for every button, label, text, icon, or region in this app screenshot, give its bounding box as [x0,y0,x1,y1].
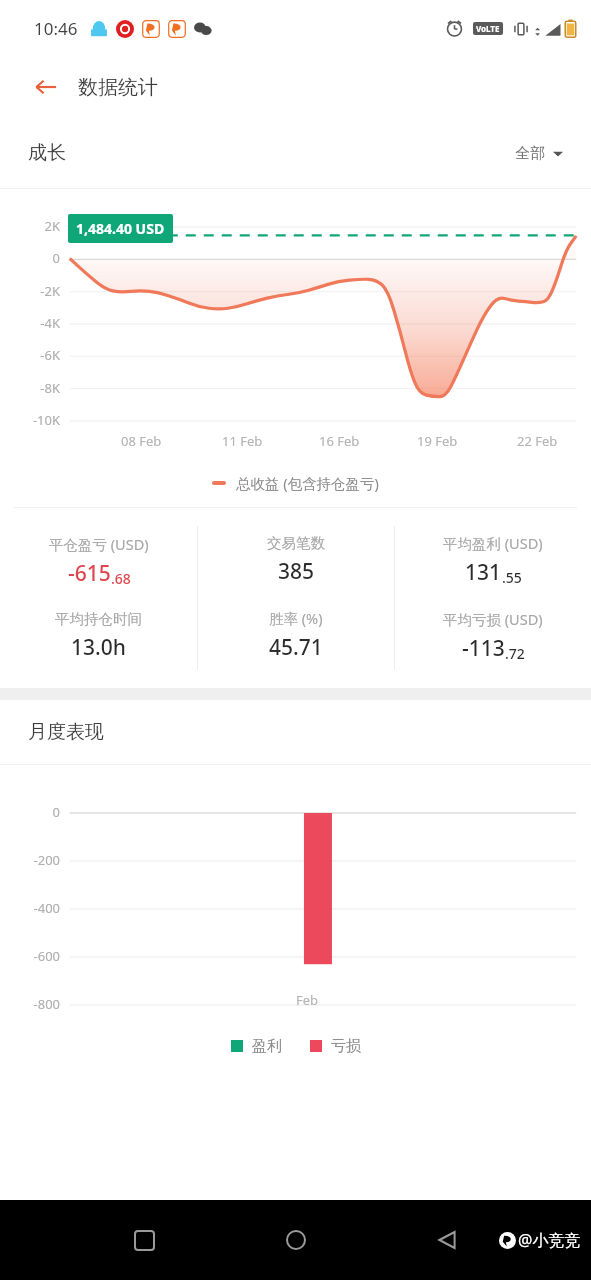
staticText: -2K [8,282,60,300]
staticText: 亏损 [331,1037,361,1056]
staticText: 胜率 (%) [269,608,323,628]
button[interactable]: Back [423,1216,471,1264]
staticText: 2K [8,217,60,235]
staticText: -6K [8,346,60,364]
staticText: .72 [505,644,525,663]
staticText: 数据统计 [78,75,158,100]
staticText: -113 [462,634,505,663]
staticText: -400 [6,899,60,917]
staticText: 131 [465,558,502,587]
staticText: 0 [8,249,60,267]
staticText: VoLTE [476,23,500,34]
staticText: 平均持仓时间 [55,610,142,628]
staticText: 22 Feb [517,432,558,450]
staticText: 385 [278,557,315,586]
staticText: 平均亏损 (USD) [443,609,543,629]
staticText: 月度表现 [28,720,104,744]
staticText: .68 [111,569,131,588]
staticText: -4K [8,314,60,332]
staticText: -800 [6,995,60,1013]
staticText: 平仓盈亏 (USD) [49,534,149,554]
staticText: 08 Feb [121,432,162,450]
staticText: 0 [6,803,60,821]
staticText: 全部 [515,144,545,163]
staticText: 16 Feb [319,432,360,450]
staticText: 11 Feb [222,432,263,450]
button[interactable]: Recent apps [120,1216,168,1264]
staticText: 13.0h [71,633,126,662]
button[interactable]: 全部 [515,144,563,163]
staticText: @小竞竞 [518,1229,581,1251]
staticText: Feb [296,991,319,1009]
staticText: 45.71 [269,633,323,662]
staticText: -10K [8,411,60,429]
button[interactable]: Back [26,67,66,107]
staticText: -615 [68,559,111,588]
staticText: 成长 [28,141,66,165]
staticText: 1,484.40 USD [76,219,165,238]
staticText: .55 [502,568,522,587]
staticText: 盈利 [252,1037,282,1056]
staticText: 19 Feb [417,432,458,450]
staticText: -600 [6,947,60,965]
staticText: 总收益 (包含持仓盈亏) [236,473,379,493]
staticText: 交易笔数 [267,534,325,552]
staticText: 平均盈利 (USD) [443,533,543,553]
staticText: 10:46 [34,17,78,40]
button[interactable]: Home [272,1216,320,1264]
staticText: -200 [6,851,60,869]
staticText: -8K [8,379,60,397]
